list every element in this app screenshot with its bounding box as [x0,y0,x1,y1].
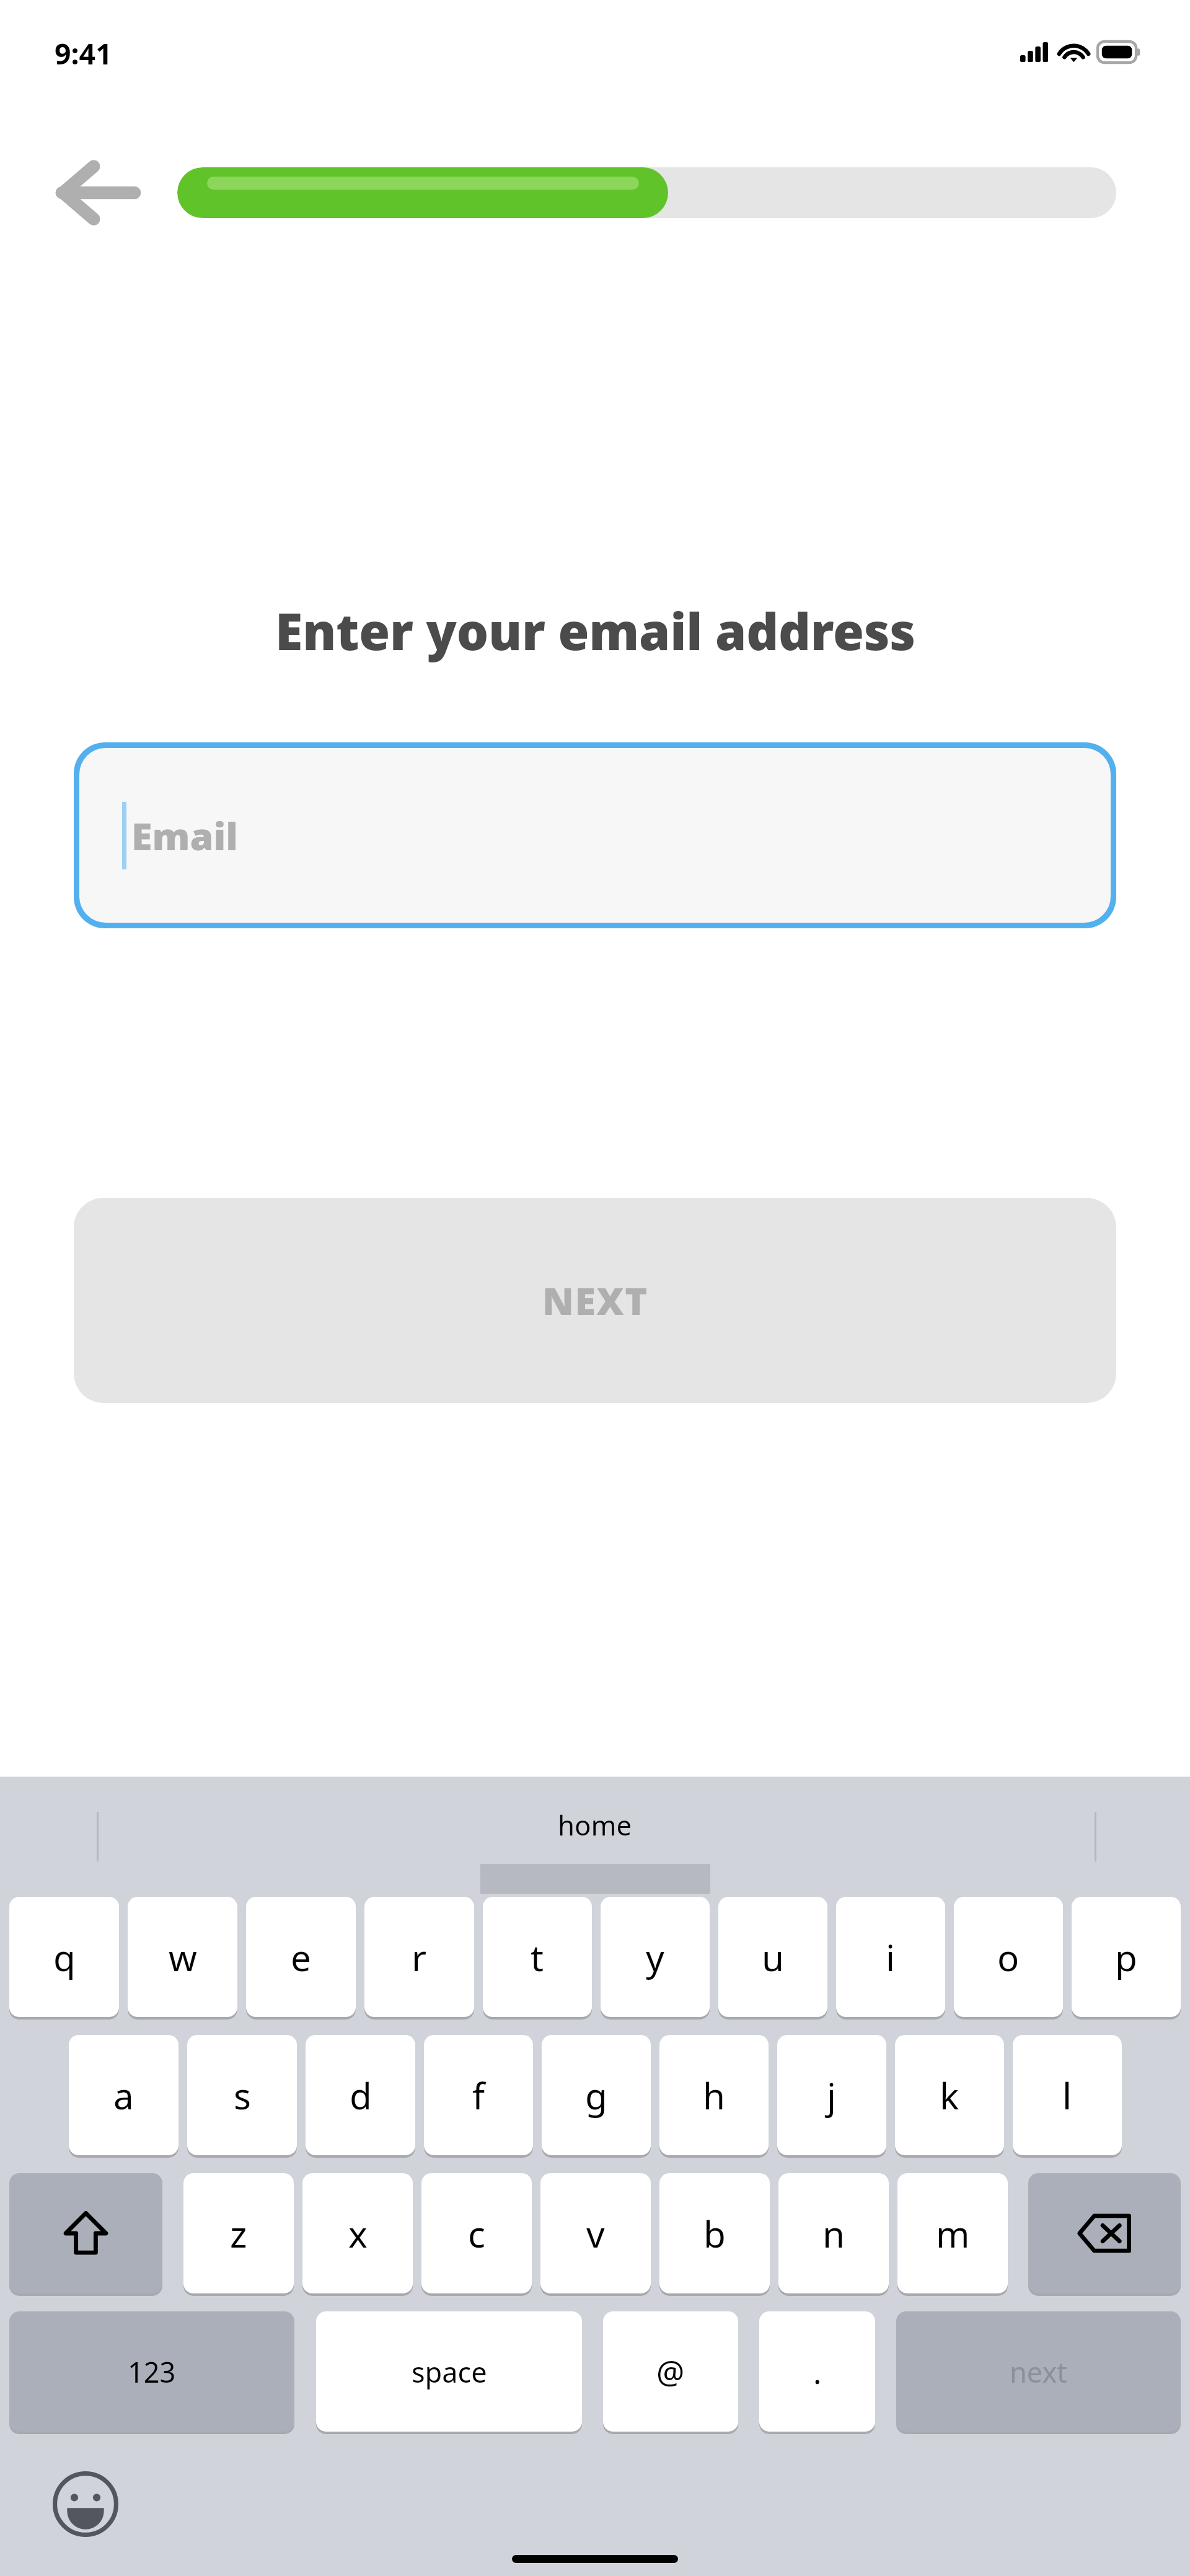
button[interactable]: w [128,1897,237,2017]
staticText: Email [131,810,238,861]
staticText: t [531,1933,544,1982]
staticText: o [997,1933,1020,1982]
button[interactable]: f [424,2035,533,2155]
button[interactable]: i [836,1897,945,2017]
staticText: g [585,2071,607,2120]
button[interactable]: next [896,2311,1181,2432]
staticText: a [113,2071,134,2120]
button[interactable]: h [659,2035,769,2155]
button[interactable]: b [659,2173,770,2293]
staticText: h [703,2071,726,2120]
staticText: l [1062,2071,1072,2120]
staticText: b [703,2209,726,2258]
button[interactable]: m [897,2173,1008,2293]
staticText: j [827,2071,837,2120]
staticText: y [646,1933,664,1982]
button[interactable]: q [9,1897,119,2017]
staticText: m [936,2209,970,2258]
staticText: r [412,1933,427,1982]
staticText: q [53,1933,76,1982]
staticText: . [813,2350,822,2393]
button[interactable]: Emoji [36,2455,134,2553]
staticText: space [412,2353,487,2391]
button[interactable]: z [183,2173,294,2293]
staticText: 9:41 [55,33,112,73]
staticText: z [230,2209,247,2258]
staticText: n [822,2209,845,2258]
staticText: Enter your email address [275,597,915,665]
button[interactable]: p [1072,1897,1181,2017]
button[interactable]: d [306,2035,415,2155]
button[interactable]: y [601,1897,710,2017]
button[interactable]: e [246,1897,356,2017]
staticText: NEXT [542,1275,648,1326]
staticText: d [350,2071,372,2120]
button[interactable]: Back [46,146,148,239]
staticText: c [468,2209,485,2258]
staticText: f [472,2071,485,2120]
button[interactable]: Backspace [1028,2173,1181,2293]
button[interactable]: space [316,2311,582,2432]
button[interactable]: home [558,1806,632,1844]
staticText: k [940,2071,959,2120]
button[interactable]: 123 [9,2311,294,2432]
button[interactable]: l [1013,2035,1122,2155]
button[interactable]: x [302,2173,413,2293]
button[interactable]: a [69,2035,178,2155]
staticText: p [1115,1933,1137,1982]
button[interactable]: . [759,2311,875,2432]
button[interactable]: NEXT [74,1198,1116,1403]
staticText: e [291,1933,311,1982]
staticText: i [886,1933,896,1982]
button[interactable]: Email [74,742,1116,928]
button[interactable]: o [954,1897,1063,2017]
button[interactable]: Shift [9,2173,162,2293]
staticText: home [558,1806,632,1844]
button[interactable]: k [895,2035,1004,2155]
staticText: x [348,2209,368,2258]
staticText: next [1010,2353,1067,2391]
button[interactable]: t [483,1897,592,2017]
button[interactable]: g [542,2035,651,2155]
staticText: s [234,2071,251,2120]
staticText: @ [656,2350,685,2393]
button[interactable]: u [718,1897,827,2017]
button[interactable]: s [187,2035,297,2155]
staticText: v [586,2209,605,2258]
button[interactable]: j [777,2035,886,2155]
button[interactable]: v [540,2173,651,2293]
staticText: w [169,1933,197,1982]
button[interactable]: r [364,1897,474,2017]
button[interactable]: @ [603,2311,738,2432]
staticText: 123 [128,2353,176,2391]
staticText: u [762,1933,785,1982]
button[interactable]: c [421,2173,532,2293]
button[interactable]: n [778,2173,889,2293]
